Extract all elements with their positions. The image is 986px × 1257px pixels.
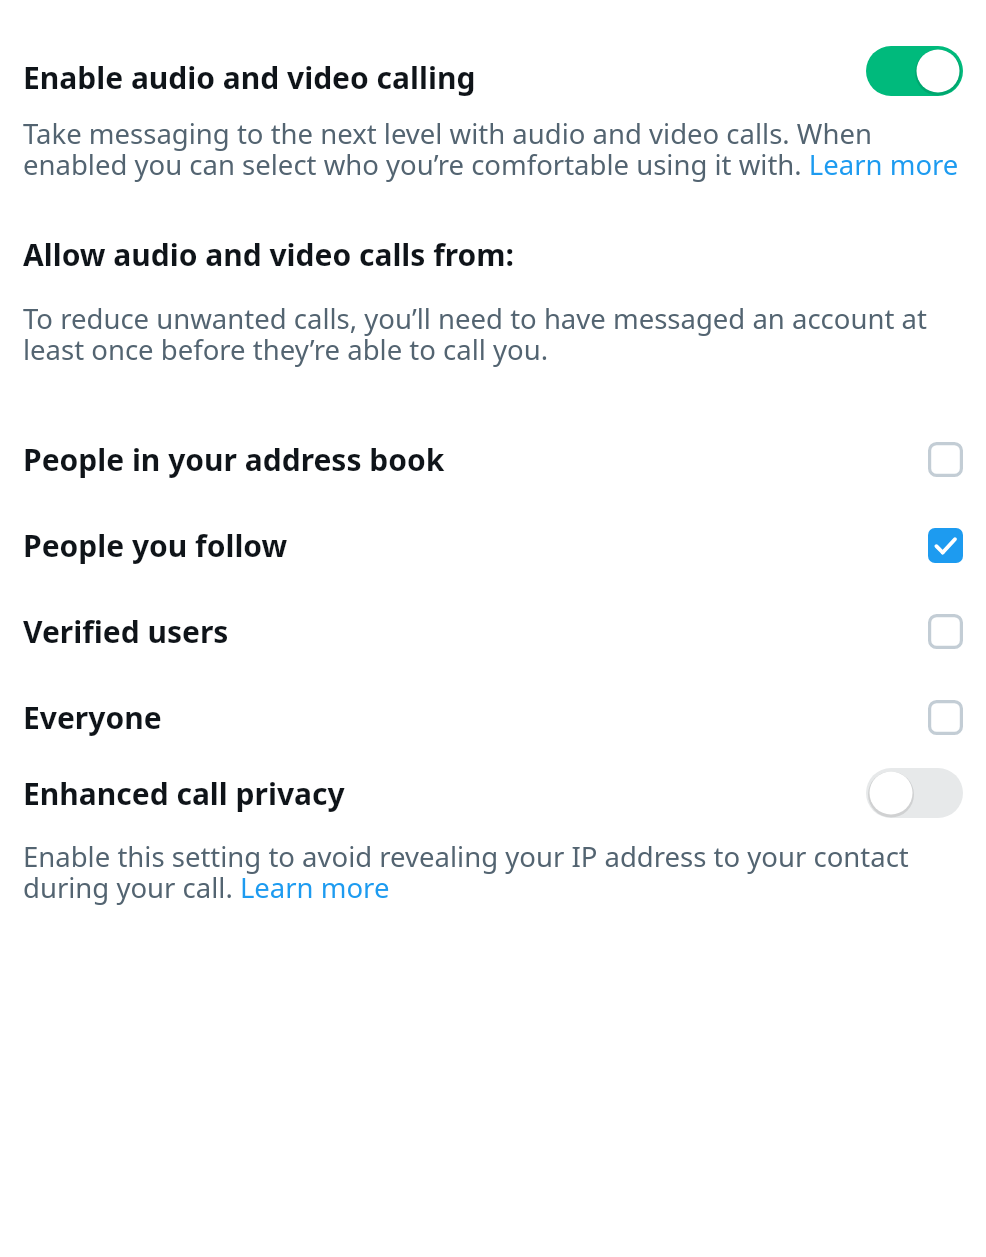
staticText: Enhanced call privacy <box>23 773 866 814</box>
button[interactable]: People in your address book <box>928 442 963 477</box>
staticText: Allow audio and video calls from: <box>23 234 515 275</box>
staticText: People in your address book <box>23 439 928 480</box>
button[interactable]: People you follow <box>23 502 963 588</box>
button[interactable]: Enhanced call privacy <box>23 768 963 818</box>
staticText: Verified users <box>23 611 928 652</box>
staticText: Enable audio and video calling <box>23 57 866 98</box>
button[interactable]: Verified users <box>23 588 963 674</box>
button[interactable]: People in your address book <box>23 416 963 502</box>
button[interactable]: Enable audio and video calling <box>866 46 963 96</box>
button[interactable]: People you follow <box>928 528 963 563</box>
button[interactable]: Everyone <box>928 700 963 735</box>
staticText: To reduce unwanted calls, you’ll need to… <box>23 300 963 368</box>
button[interactable]: Enhanced call privacy <box>866 768 963 818</box>
button[interactable]: Enable audio and video calling <box>23 46 963 96</box>
button[interactable]: Verified users <box>928 614 963 649</box>
staticText: Everyone <box>23 697 928 738</box>
button[interactable]: Everyone <box>23 674 963 760</box>
staticText: Take messaging to the next level with au… <box>23 115 963 183</box>
staticText: Enable this setting to avoid revealing y… <box>23 838 963 906</box>
staticText: People you follow <box>23 525 928 566</box>
